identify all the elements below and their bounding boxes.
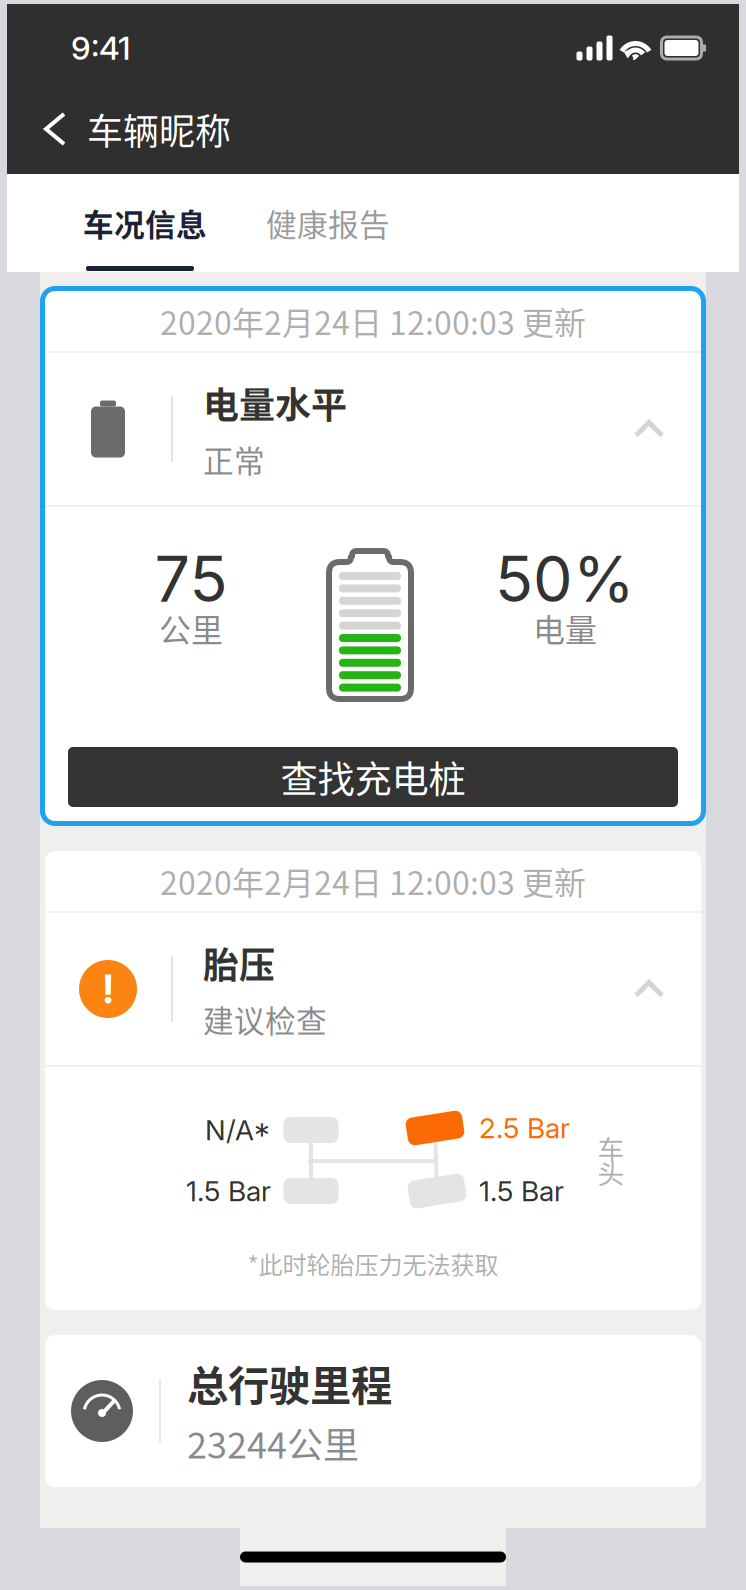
staticText: 车况信息	[83, 201, 207, 245]
button[interactable]: 健康报告	[266, 174, 390, 272]
staticText: 胎压	[203, 937, 275, 989]
button[interactable]: 电量水平	[45, 353, 701, 505]
button[interactable]: 车况信息	[83, 174, 207, 272]
staticText: 总行驶里程	[187, 1353, 392, 1413]
staticText: 50%	[495, 541, 635, 617]
staticText: !	[103, 965, 113, 1013]
staticText: 75	[154, 541, 227, 617]
staticText: 电量水平	[203, 377, 347, 429]
staticText: 查找充电桩	[280, 750, 465, 804]
staticText: 健康报告	[266, 201, 390, 245]
button[interactable]: !	[45, 913, 701, 1065]
staticText: 车	[597, 1129, 624, 1167]
staticText: N/A*	[205, 1113, 271, 1147]
staticText: 2020年2月24日 12:00:03 更新	[160, 858, 586, 904]
staticText: 1.5 Bar	[186, 1174, 271, 1208]
staticText: 23244公里	[187, 1417, 359, 1469]
staticText: 电量	[533, 605, 597, 651]
staticText: *此时轮胎压力无法获取	[247, 1246, 498, 1281]
button[interactable]: 查找充电桩	[68, 747, 678, 807]
staticText: 车辆昵称	[87, 103, 231, 155]
staticText: 头	[597, 1153, 624, 1191]
staticText: 9:41	[71, 29, 131, 67]
staticText: 1.5 Bar	[479, 1174, 564, 1208]
button[interactable]: 总行驶里程	[45, 1335, 701, 1487]
button[interactable]: Back	[29, 102, 81, 156]
staticText: 建议检查	[203, 997, 327, 1041]
staticText: 2.5 Bar	[479, 1111, 570, 1145]
staticText: 正常	[203, 437, 265, 481]
staticText: 公里	[159, 605, 223, 651]
staticText: 2020年2月24日 12:00:03 更新	[160, 298, 586, 344]
